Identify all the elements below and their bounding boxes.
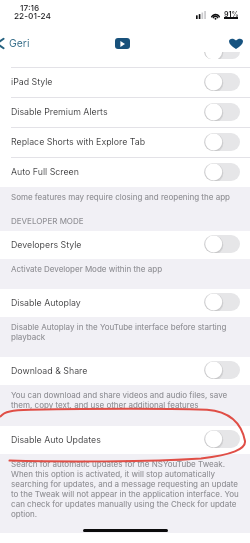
button[interactable]: Toggle xyxy=(204,293,240,311)
button[interactable]: Disable Autoplay xyxy=(0,289,250,317)
button[interactable]: Toggle xyxy=(204,163,240,181)
button[interactable]: Toggle xyxy=(204,430,240,448)
staticText: Disable Autoplay in the YouTube interfac… xyxy=(11,322,241,342)
button[interactable]: Toggle xyxy=(204,52,240,59)
staticText: 17:16 xyxy=(20,3,40,13)
button[interactable]: Disable Auto Updates xyxy=(0,426,250,454)
staticText: Replace Shorts with Explore Tab xyxy=(11,136,146,147)
staticText: You can download and share videos and au… xyxy=(11,390,241,410)
staticText: Some features may require closing and re… xyxy=(11,192,230,202)
staticText: Disable Premium Alerts xyxy=(11,106,108,117)
button[interactable]: Favorite xyxy=(223,33,249,54)
staticText: 22-01-24 xyxy=(14,11,51,21)
staticText: Auto Full Screen xyxy=(11,166,79,177)
button[interactable]: Toggle xyxy=(204,133,240,151)
button[interactable]: Download & Share xyxy=(0,357,250,385)
button[interactable]: Disable Premium Alerts xyxy=(0,98,250,127)
staticText: Developers Style xyxy=(11,239,82,250)
button[interactable]: Replace Shorts with Explore Tab xyxy=(0,128,250,157)
staticText: Disable Autoplay xyxy=(11,297,81,308)
button[interactable]: Toggle xyxy=(204,361,240,379)
button[interactable]: Developers Style xyxy=(0,231,250,259)
staticText: Geri xyxy=(9,37,30,50)
button[interactable]: Auto Full Screen xyxy=(0,158,250,187)
staticText: 91% xyxy=(224,10,239,18)
staticText: Activate Developer Mode within the app xyxy=(11,264,163,274)
button[interactable]: Geri xyxy=(0,36,36,51)
button[interactable]: Toggle xyxy=(204,235,240,253)
button[interactable]: Toggle xyxy=(204,73,240,91)
staticText: Download & Share xyxy=(11,365,88,376)
staticText: Search for automatic updates for the NSY… xyxy=(11,459,241,519)
button[interactable]: Toggle xyxy=(204,103,240,121)
staticText: DEVELOPER MODE xyxy=(11,216,84,226)
button[interactable]: iPad Style xyxy=(0,68,250,97)
staticText: Disable Auto Updates xyxy=(11,434,101,445)
staticText: iPad Style xyxy=(11,76,53,87)
button[interactable]: NSYouTube logo xyxy=(115,38,130,49)
